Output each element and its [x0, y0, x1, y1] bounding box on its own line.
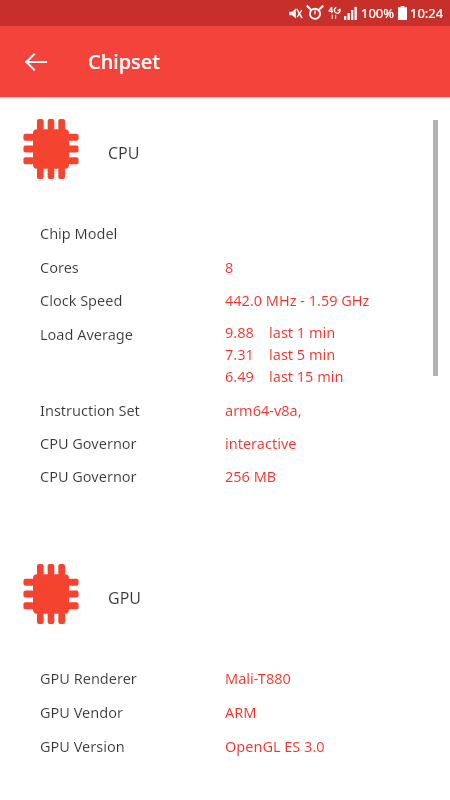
button[interactable]: GPU Vendor: [0, 699, 450, 725]
button[interactable]: Clock Speed: [0, 287, 450, 313]
button[interactable]: Back: [12, 38, 60, 86]
staticText: CPU Governor: [40, 433, 137, 453]
staticText: 256 MB: [225, 466, 277, 486]
staticText: Instruction Set: [40, 400, 140, 420]
staticText: Clock Speed: [40, 290, 123, 310]
button[interactable]: CPU Governor: [0, 430, 450, 456]
staticText: 8: [225, 257, 234, 277]
staticText: Load Average: [40, 324, 133, 344]
button[interactable]: Chip Model: [0, 220, 450, 246]
staticText: 10:24: [410, 4, 444, 22]
button[interactable]: CPU Governor: [0, 463, 450, 489]
button[interactable]: Cores: [0, 254, 450, 280]
button[interactable]: Load Average: [0, 321, 450, 347]
staticText: arm64-v8a,: [225, 400, 302, 420]
button[interactable]: GPU Renderer: [0, 665, 450, 691]
staticText: 100%: [361, 4, 395, 22]
button[interactable]: Instruction Set: [0, 397, 450, 423]
staticText: 6.49: [225, 366, 254, 386]
staticText: interactive: [225, 433, 297, 453]
staticText: CPU: [108, 142, 140, 164]
staticText: Cores: [40, 257, 79, 277]
staticText: 9.88: [225, 322, 254, 342]
staticText: Mali-T880: [225, 668, 291, 688]
staticText: Chip Model: [40, 223, 118, 243]
staticText: GPU Vendor: [40, 702, 123, 722]
staticText: GPU Version: [40, 736, 125, 756]
staticText: OpenGL ES 3.0: [225, 736, 325, 756]
staticText: CPU Governor: [40, 466, 137, 486]
staticText: last 5 min: [269, 344, 336, 364]
staticText: 7.31: [225, 344, 254, 364]
staticText: ARM: [225, 702, 257, 722]
button[interactable]: GPU Version: [0, 733, 450, 759]
staticText: last 1 min: [269, 322, 336, 342]
staticText: GPU: [108, 587, 142, 609]
staticText: GPU Renderer: [40, 668, 137, 688]
staticText: last 15 min: [269, 366, 344, 386]
staticText: Chipset: [88, 48, 160, 75]
staticText: 442.0 MHz - 1.59 GHz: [225, 290, 370, 310]
